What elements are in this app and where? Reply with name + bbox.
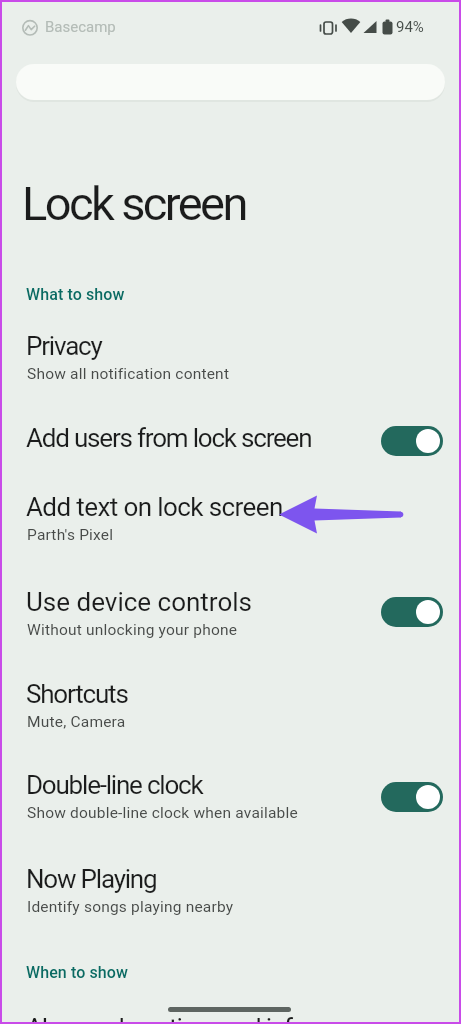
button[interactable] <box>0 850 461 935</box>
staticText: Show double-line clock when available <box>27 804 298 822</box>
staticText: Parth's Pixel <box>27 526 114 544</box>
staticText: Always show time and info <box>26 1013 306 1024</box>
button[interactable] <box>0 665 461 750</box>
staticText: Add text on lock screen <box>26 492 283 522</box>
staticText: Double-line clock <box>26 770 203 800</box>
button[interactable] <box>381 426 443 456</box>
button[interactable] <box>381 782 443 812</box>
button[interactable] <box>381 597 443 627</box>
staticText: Basecamp <box>45 18 116 36</box>
staticText: Use device controls <box>26 587 252 617</box>
staticText: Mute, Camera <box>27 713 126 731</box>
staticText: 94% <box>396 18 424 36</box>
staticText: Privacy <box>26 331 102 361</box>
staticText: Lock screen <box>22 176 246 231</box>
staticText: Identify songs playing nearby <box>27 898 234 916</box>
staticText: Without unlocking your phone <box>27 621 238 639</box>
button[interactable] <box>0 317 461 402</box>
staticText: Add users from lock screen <box>26 423 312 453</box>
staticText: What to show <box>26 285 125 304</box>
button[interactable] <box>0 478 461 563</box>
button[interactable] <box>0 573 461 658</box>
staticText: Show all notification content <box>27 365 230 383</box>
button[interactable] <box>0 756 461 841</box>
staticText: Shortcuts <box>26 679 128 709</box>
staticText: Now Playing <box>26 864 157 894</box>
staticText: When to show <box>26 963 128 982</box>
button[interactable] <box>0 409 461 475</box>
